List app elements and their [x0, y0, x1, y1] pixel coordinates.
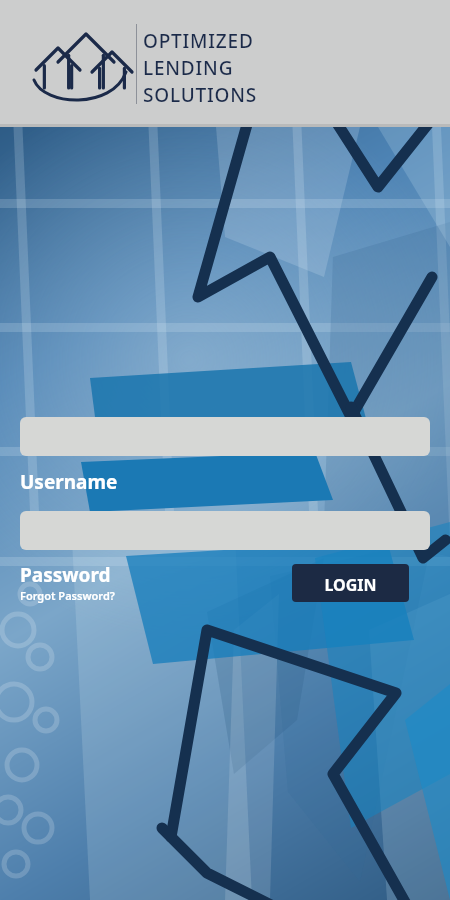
button[interactable]: Password input — [20, 511, 430, 550]
staticText: Forgot Password? — [20, 588, 115, 603]
button[interactable]: Username input — [20, 417, 430, 456]
staticText: Password — [20, 562, 111, 588]
staticText: Username — [20, 469, 118, 495]
button[interactable]: LOGIN — [292, 564, 409, 602]
staticText: LOGIN — [292, 574, 409, 594]
staticText: OPTIMIZED — [143, 28, 254, 54]
button[interactable]: Forgot Password? — [20, 588, 115, 603]
staticText: LENDING — [143, 55, 234, 81]
staticText: SOLUTIONS — [143, 82, 258, 108]
